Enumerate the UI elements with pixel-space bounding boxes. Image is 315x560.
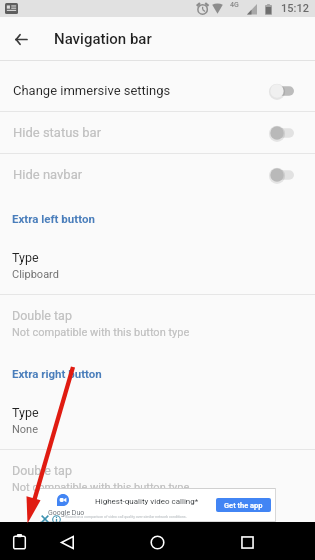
staticText: Get the app (224, 501, 263, 510)
staticText: 15:12 (281, 2, 309, 15)
staticText: Extra left button (12, 212, 95, 225)
staticText: Extra right button (12, 367, 102, 380)
staticText: Highest-quality video calling* (95, 497, 199, 506)
button[interactable]: Double tap (0, 450, 315, 505)
button[interactable]: Change immersive settings (0, 70, 315, 111)
staticText: Hide navbar (13, 167, 270, 182)
staticText: Not compatible with this button type (12, 481, 190, 494)
button[interactable]: Type (0, 394, 315, 449)
button[interactable]: Get the app (216, 498, 271, 512)
staticText: Not compatible with this button type (12, 326, 190, 339)
button[interactable]: Hide navbar (0, 154, 315, 195)
staticText: Type (12, 405, 39, 420)
button[interactable]: Hide status bar (0, 112, 315, 153)
staticText: 4G (230, 1, 239, 9)
button[interactable]: Close ad (41, 515, 49, 523)
staticText: Type (12, 250, 39, 265)
button[interactable]: Double tap (0, 295, 315, 350)
staticText: None (12, 423, 39, 436)
staticText: Double tap (12, 463, 72, 478)
button[interactable]: Ad info (52, 515, 61, 524)
staticText: *Based on a comparison of video call qua… (64, 515, 187, 519)
button[interactable]: Back (5, 23, 37, 55)
button[interactable]: Back (60, 535, 75, 550)
button[interactable]: Home (150, 535, 165, 550)
button[interactable]: Recents (240, 535, 255, 550)
staticText: Double tap (12, 308, 72, 323)
button[interactable]: Clipboard (13, 534, 26, 549)
button[interactable]: Type (0, 239, 315, 294)
staticText: Hide status bar (13, 125, 270, 140)
staticText: Change immersive settings (13, 83, 270, 98)
staticText: Google Duo (48, 509, 85, 517)
staticText: Clipboard (12, 268, 59, 281)
staticText: Navigation bar (54, 30, 152, 48)
